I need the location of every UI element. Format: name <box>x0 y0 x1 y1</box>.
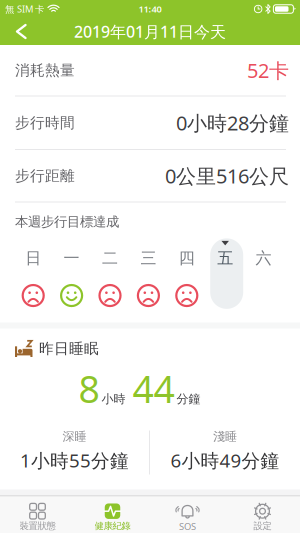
staticText: 裝置狀態 <box>19 520 55 532</box>
staticText: 健康紀錄 <box>94 520 130 532</box>
button[interactable]: 星期五 <box>206 234 244 309</box>
button[interactable]: 星期四 <box>168 234 206 309</box>
staticText: 昨日睡眠 <box>39 339 99 357</box>
button[interactable]: 星期三 <box>129 234 168 309</box>
staticText: 深睡 <box>62 429 86 444</box>
staticText: 本週步行目標達成 <box>15 213 119 230</box>
staticText: 步行時間 <box>15 114 75 132</box>
staticText: 四 <box>179 248 195 268</box>
staticText: 五 <box>217 248 233 268</box>
staticText: 一 <box>64 248 80 268</box>
staticText: 六 <box>256 248 272 268</box>
staticText: 二 <box>102 248 118 268</box>
staticText: 消耗熱量 <box>15 61 75 79</box>
staticText: 日 <box>25 248 41 268</box>
staticText: 8 <box>78 364 99 413</box>
button[interactable]: 健康紀錄 <box>75 496 150 533</box>
button[interactable]: Back <box>0 19 38 44</box>
button[interactable]: 星期二 <box>91 234 129 309</box>
staticText: SOS <box>179 520 196 533</box>
staticText: 11:40 <box>138 3 161 15</box>
staticText: 分鐘 <box>176 392 200 406</box>
staticText: 步行距離 <box>15 167 75 185</box>
staticText: 淺睡 <box>213 429 237 444</box>
staticText: 小時 <box>101 392 125 406</box>
staticText: 0公里516公尺 <box>165 162 289 189</box>
button[interactable]: 裝置狀態 <box>0 496 75 533</box>
button[interactable]: 星期一 <box>52 234 91 309</box>
staticText: 52卡 <box>247 57 289 84</box>
staticText: 2019年01月11日今天 <box>74 21 226 42</box>
button[interactable]: 星期日 <box>14 234 52 309</box>
staticText: 0小時28分鐘 <box>176 109 289 136</box>
button[interactable]: 星期六 <box>244 234 283 309</box>
staticText: 1小時55分鐘 <box>20 448 129 473</box>
button[interactable]: 設定 <box>225 496 300 533</box>
staticText: 三 <box>140 248 156 268</box>
staticText: 無 SIM 卡 <box>5 3 44 15</box>
button[interactable]: SOS <box>150 496 225 533</box>
staticText: 設定 <box>253 520 271 532</box>
staticText: 44 <box>132 364 174 413</box>
staticText: 6小時49分鐘 <box>170 448 279 473</box>
